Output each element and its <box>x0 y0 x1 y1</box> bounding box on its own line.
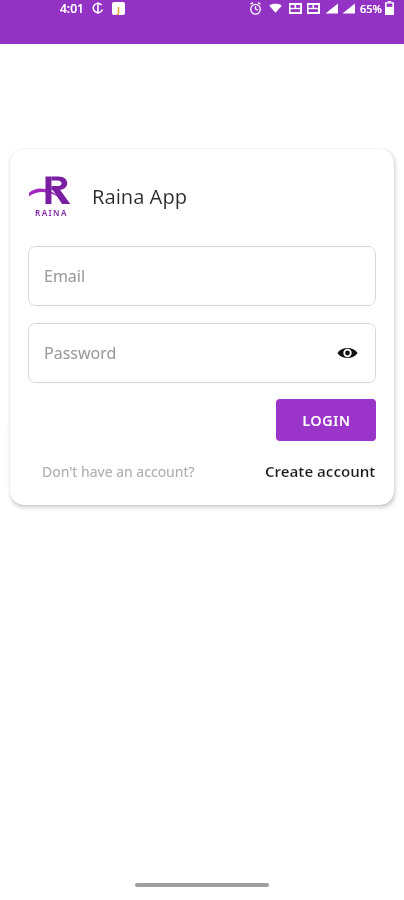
staticText: Don't have an account? <box>42 462 195 481</box>
staticText: Password <box>44 342 117 364</box>
staticText: J <box>117 3 120 15</box>
staticText: RAINA <box>35 207 68 218</box>
staticText: LOGIN <box>302 411 351 430</box>
button[interactable]: Create account <box>265 461 376 481</box>
button[interactable]: LOGIN <box>276 399 376 441</box>
staticText: 4:01 <box>60 0 84 16</box>
button[interactable]: Show password <box>334 340 360 366</box>
staticText: Email <box>44 265 86 287</box>
button[interactable]: Password <box>28 323 376 383</box>
staticText: Create account <box>265 461 376 481</box>
button[interactable]: Email <box>28 246 376 306</box>
staticText: Raina App <box>92 183 187 210</box>
staticText: 65% <box>360 1 382 16</box>
